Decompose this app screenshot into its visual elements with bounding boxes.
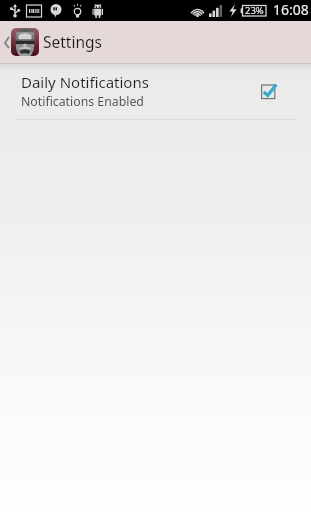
button[interactable]: Navigate up (0, 21, 311, 63)
staticText: Daily Notifications (21, 72, 149, 92)
button[interactable]: Daily Notifications enabled (264, 78, 290, 104)
staticText: Notifications Enabled (21, 93, 144, 110)
staticText: 23% (245, 4, 264, 17)
staticText: Settings (43, 31, 102, 52)
button[interactable]: Daily Notifications (0, 63, 311, 119)
staticText: 16:08 (273, 0, 309, 19)
